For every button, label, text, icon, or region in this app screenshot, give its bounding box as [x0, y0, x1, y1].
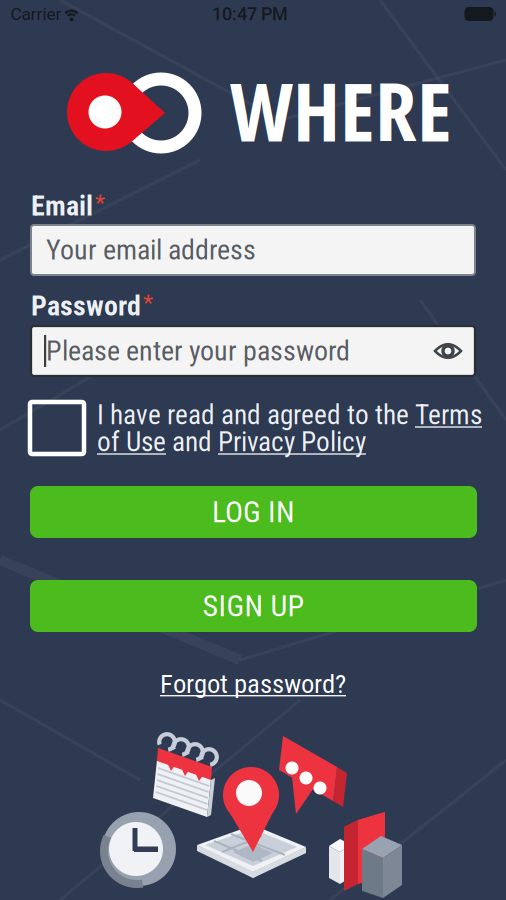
button[interactable]: Forgot password? — [160, 668, 346, 700]
staticText: 10:47 PM — [212, 3, 288, 25]
staticText: Carrier — [10, 4, 61, 24]
staticText: Forgot password? — [160, 668, 346, 700]
staticText: WHERE — [230, 55, 452, 165]
staticText: SIGN UP — [202, 588, 304, 624]
button[interactable]: SIGN UP — [30, 580, 477, 632]
button[interactable]: LOG IN — [30, 486, 477, 538]
button[interactable] — [30, 402, 84, 454]
staticText: LOG IN — [212, 494, 295, 530]
staticText: of Use and Privacy Policy — [97, 426, 366, 458]
staticText: * — [143, 290, 153, 316]
button[interactable]: Please enter your password — [31, 326, 475, 376]
staticText: I have read and agreed to the Terms — [97, 399, 482, 431]
staticText: Your email address — [46, 234, 256, 266]
staticText: Email — [31, 190, 93, 222]
staticText: * — [95, 190, 105, 216]
staticText: Please enter your password — [46, 335, 350, 367]
button[interactable]: Your email address — [31, 225, 475, 275]
staticText: Password — [31, 290, 141, 322]
